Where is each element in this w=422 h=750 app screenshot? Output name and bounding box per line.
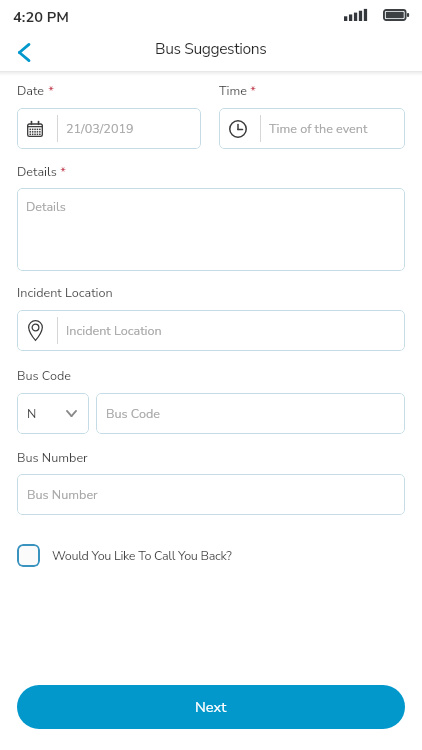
staticText: 4:20 PM	[13, 7, 70, 27]
staticText: Details	[26, 198, 66, 215]
staticText: Date	[17, 82, 45, 99]
button[interactable]: Bus Code	[96, 393, 405, 434]
staticText: 21/03/2019	[66, 120, 134, 137]
staticText: *	[247, 82, 256, 99]
button[interactable]: 21/03/2019	[17, 108, 201, 149]
staticText: Bus Code	[106, 405, 160, 422]
staticText: Incident Location	[66, 322, 162, 339]
staticText: Would You Like To Call You Back?	[52, 547, 232, 564]
staticText: N	[27, 405, 37, 422]
button[interactable]: Bus Number	[17, 474, 405, 515]
staticText: Bus Number	[27, 486, 98, 503]
staticText: *	[57, 163, 66, 180]
button[interactable]: Next	[17, 685, 405, 729]
button[interactable]: Details	[17, 188, 405, 271]
staticText: Next	[195, 697, 227, 717]
button[interactable]: Would You Like To Call You Back?	[17, 544, 232, 567]
button[interactable]: Time of the event	[219, 108, 405, 149]
staticText: Details	[17, 163, 57, 180]
button[interactable]: Incident Location	[17, 310, 405, 351]
staticText: Bus Suggestions	[155, 38, 267, 59]
staticText: Bus Code	[17, 367, 71, 384]
staticText: Time of the event	[269, 120, 368, 137]
staticText: Time	[219, 82, 247, 99]
staticText: Bus Number	[17, 449, 88, 466]
button[interactable]: Back	[7, 35, 41, 69]
staticText: *	[45, 82, 54, 99]
staticText: Incident Location	[17, 284, 113, 301]
button[interactable]: N	[17, 393, 89, 434]
